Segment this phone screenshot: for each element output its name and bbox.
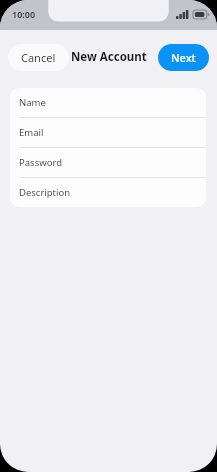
staticText: Description <box>19 186 71 199</box>
staticText: Password <box>19 156 62 169</box>
button[interactable]: Cancel <box>8 44 69 71</box>
button[interactable]: Name <box>10 88 206 117</box>
button[interactable]: Password <box>10 148 206 177</box>
button[interactable]: Next <box>158 44 209 71</box>
staticText: Cancel <box>21 50 56 65</box>
staticText: New Account <box>71 49 147 65</box>
staticText: 10:00 <box>12 8 36 20</box>
staticText: Email <box>19 126 44 139</box>
staticText: Next <box>171 50 196 65</box>
button[interactable]: Description <box>10 178 206 207</box>
button[interactable]: Email <box>10 118 206 147</box>
staticText: Name <box>19 96 46 109</box>
